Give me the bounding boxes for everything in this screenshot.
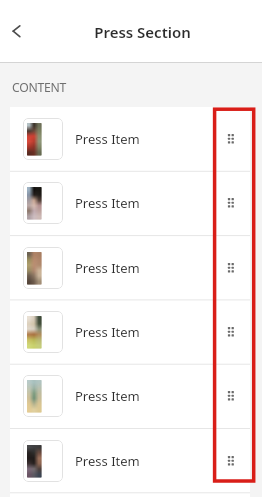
staticText: Press Item — [75, 194, 140, 212]
button[interactable]: Press Item — [10, 300, 250, 364]
button[interactable]: Press Item — [10, 236, 250, 300]
button[interactable]: Press Item — [10, 493, 250, 497]
button[interactable]: Back — [0, 15, 34, 49]
staticText: Press Item — [75, 452, 140, 470]
button[interactable]: Reorder — [219, 127, 243, 151]
staticText: Press Item — [75, 259, 140, 277]
staticText: Press Item — [75, 323, 140, 341]
button[interactable]: Reorder — [219, 191, 243, 215]
staticText: Press Item — [75, 387, 140, 405]
staticText: CONTENT — [12, 79, 67, 96]
button[interactable]: Press Item — [10, 364, 250, 428]
button[interactable]: Press Item — [10, 171, 250, 235]
button[interactable]: Reorder — [219, 449, 243, 473]
button[interactable]: Reorder — [219, 256, 243, 280]
staticText: Press Item — [75, 130, 140, 148]
button[interactable]: Reorder — [219, 320, 243, 344]
button[interactable]: Press Item — [10, 107, 250, 171]
button[interactable]: Press Item — [10, 429, 250, 493]
staticText: Press Section — [94, 22, 191, 42]
button[interactable]: Reorder — [219, 384, 243, 408]
